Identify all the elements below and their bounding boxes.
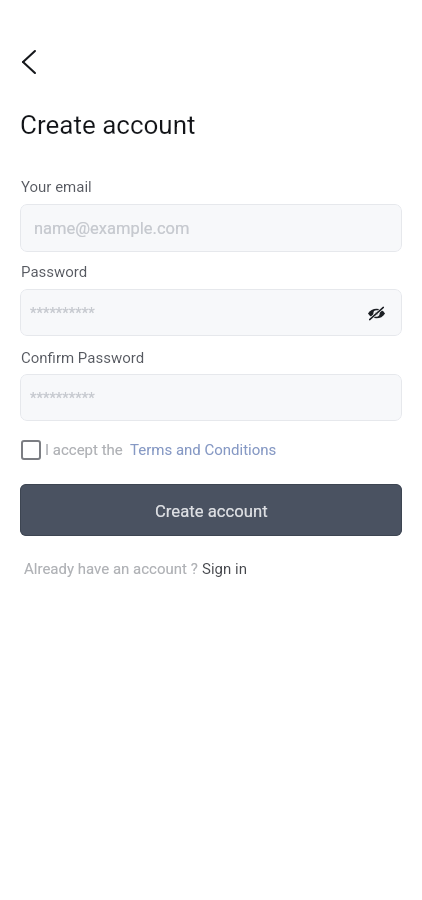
button[interactable]: Sign in bbox=[202, 560, 247, 578]
staticText: Create account bbox=[20, 110, 196, 140]
button[interactable]: ********** bbox=[20, 289, 402, 336]
staticText: Password bbox=[21, 263, 88, 281]
button[interactable]: Create account bbox=[20, 484, 402, 536]
button[interactable]: name@example.com bbox=[20, 204, 402, 252]
staticText: Your email bbox=[21, 178, 92, 196]
button[interactable]: I accept the terms checkbox bbox=[21, 440, 127, 460]
staticText: Create account bbox=[155, 502, 268, 522]
staticText: Confirm Password bbox=[21, 349, 145, 367]
staticText: ********** bbox=[30, 389, 95, 407]
button[interactable]: Toggle password visibility bbox=[364, 301, 388, 325]
button[interactable]: Terms and Conditions bbox=[130, 441, 277, 459]
staticText: I accept the bbox=[45, 441, 127, 459]
staticText: ********** bbox=[30, 304, 95, 322]
staticText: Already have an account ? bbox=[24, 560, 202, 578]
staticText: name@example.com bbox=[34, 219, 190, 238]
button[interactable]: ********** bbox=[20, 374, 402, 421]
button[interactable]: Back bbox=[9, 42, 49, 82]
